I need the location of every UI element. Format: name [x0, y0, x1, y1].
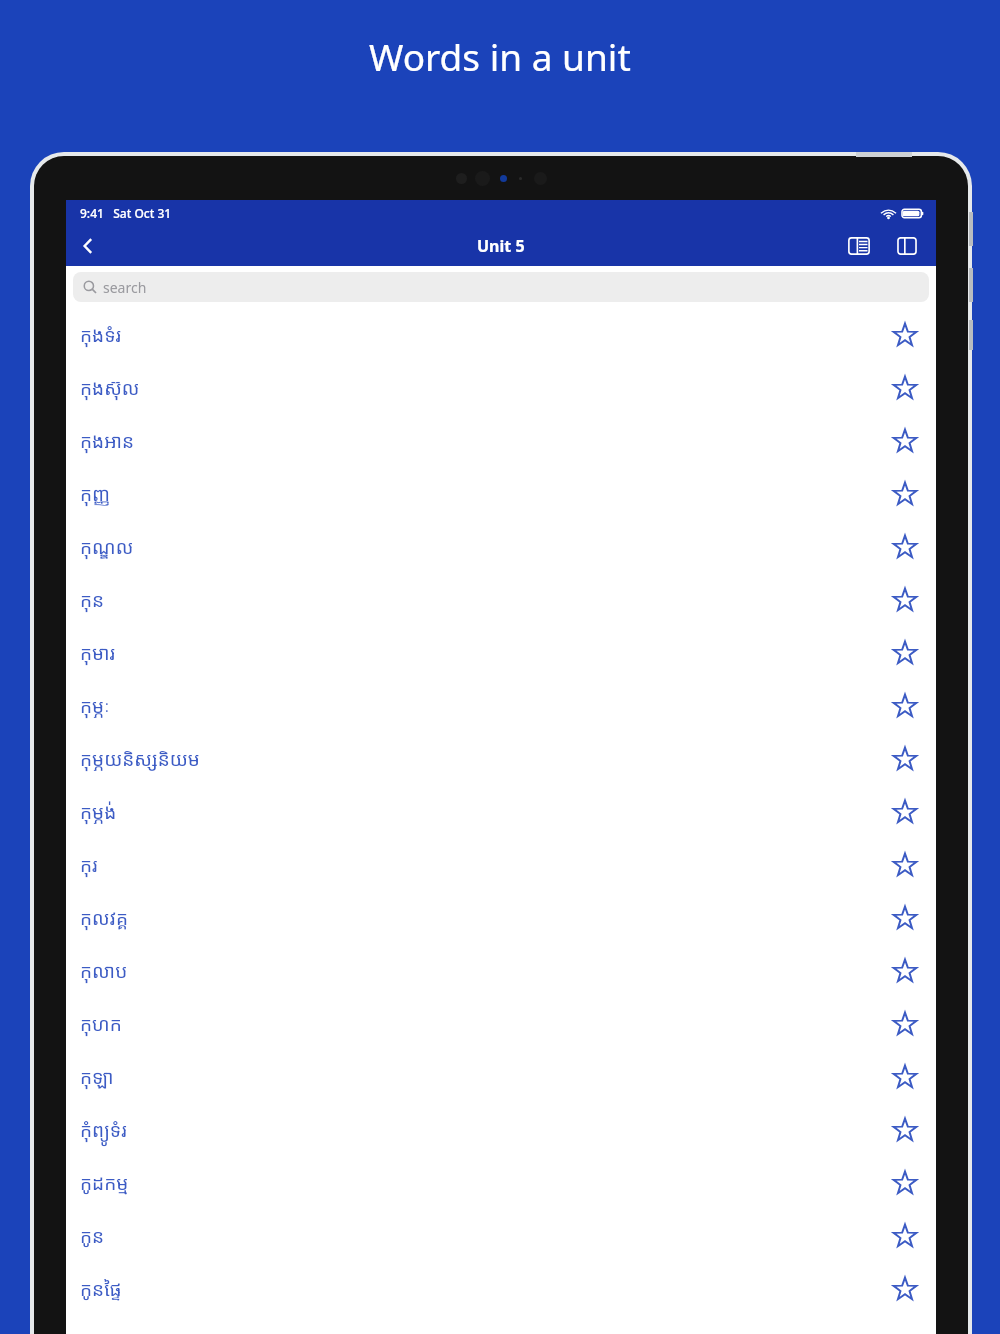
button[interactable]: Favourite [888, 901, 922, 935]
button[interactable]: កុលាប [66, 944, 936, 997]
staticText: កុម្ភៈ [80, 693, 888, 719]
button[interactable]: Favourite [888, 636, 922, 670]
staticText: កុលាប [80, 958, 888, 984]
button[interactable]: Favourite [888, 795, 922, 829]
button[interactable]: Show sidebar [840, 227, 878, 265]
button[interactable]: កុងអាន [66, 414, 936, 467]
staticText: កុងទំរ [80, 322, 888, 348]
staticText: កុរ [80, 852, 888, 878]
button[interactable]: Favourite [888, 1166, 922, 1200]
button[interactable]: កុមារ [66, 626, 936, 679]
button[interactable]: Favourite [888, 1113, 922, 1147]
button[interactable]: Favourite [888, 477, 922, 511]
staticText: search [103, 278, 147, 297]
button[interactable]: Favourite [888, 954, 922, 988]
button[interactable]: កុម្ភៈ [66, 679, 936, 732]
button[interactable]: កុញ្ញ [66, 467, 936, 520]
button[interactable]: កុន [66, 573, 936, 626]
button[interactable]: កុងទំរ [66, 308, 936, 361]
button[interactable]: កូន [66, 1209, 936, 1262]
button[interactable]: Favourite [888, 848, 922, 882]
staticText: កុមារ [80, 640, 888, 666]
button[interactable]: Favourite [888, 689, 922, 723]
staticText: កុហក [80, 1011, 888, 1037]
staticText: កុងអាន [80, 428, 888, 454]
staticText: កូន [80, 1223, 888, 1249]
staticText: កុំព្យូទំរ [80, 1117, 888, 1143]
button[interactable]: កុំព្យូទំរ [66, 1103, 936, 1156]
button[interactable]: Favourite [888, 1219, 922, 1253]
staticText: កុម្ភង់ [80, 799, 888, 825]
button[interactable]: កូដកម្ម [66, 1156, 936, 1209]
staticText: កុន [80, 587, 888, 613]
button[interactable]: កុលវគ្គ [66, 891, 936, 944]
staticText: 9:41 Sat Oct 31 [80, 205, 172, 221]
button[interactable]: កុឡា [66, 1050, 936, 1103]
button[interactable]: Favourite [888, 424, 922, 458]
staticText: កុលវគ្គ [80, 905, 888, 931]
button[interactable]: Split view [888, 227, 926, 265]
button[interactable]: Back [66, 226, 110, 266]
staticText: Words in a unit [369, 31, 631, 81]
button[interactable]: Favourite [888, 1272, 922, 1306]
button[interactable]: កុហក [66, 997, 936, 1050]
staticText: កុងស៊ុល [80, 375, 888, 401]
button[interactable]: Favourite [888, 530, 922, 564]
staticText: កុញ្ញ [80, 481, 888, 507]
button[interactable]: កុរ [66, 838, 936, 891]
button[interactable]: កុងស៊ុល [66, 361, 936, 414]
button[interactable]: Favourite [888, 1007, 922, 1041]
button[interactable]: កុម្ភយនិស្សនិយម [66, 732, 936, 785]
staticText: Unit 5 [477, 235, 525, 257]
staticText: កូនផ្ទៃ [80, 1276, 888, 1302]
button[interactable]: Favourite [888, 318, 922, 352]
button[interactable]: Favourite [888, 583, 922, 617]
button[interactable]: កុម្ភង់ [66, 785, 936, 838]
button[interactable]: កុណ្ឌល [66, 520, 936, 573]
button[interactable]: Favourite [888, 742, 922, 776]
staticText: កុឡា [80, 1064, 888, 1090]
button[interactable]: កូនផ្ទៃ [66, 1262, 936, 1315]
staticText: កុណ្ឌល [80, 534, 888, 560]
staticText: កុម្ភយនិស្សនិយម [80, 746, 888, 772]
staticText: កូដកម្ម [80, 1170, 888, 1196]
button[interactable]: Favourite [888, 371, 922, 405]
button[interactable]: search [73, 272, 929, 302]
button[interactable]: Favourite [888, 1060, 922, 1094]
